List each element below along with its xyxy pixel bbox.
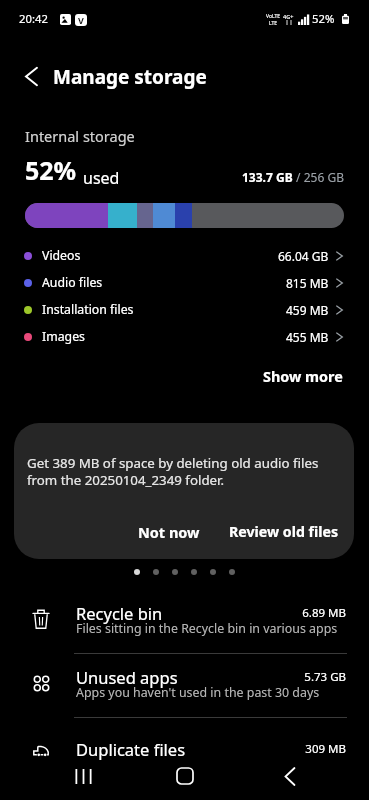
staticText: 6.89 MB xyxy=(0,605,346,621)
staticText: Not now xyxy=(138,522,200,542)
staticText: V xyxy=(78,14,84,26)
staticText: Installation files xyxy=(42,301,134,318)
staticText: LTE xyxy=(269,20,278,27)
staticText: 815 MB xyxy=(286,275,329,291)
staticText: 66.04 GB xyxy=(278,248,329,264)
staticText: 459 MB xyxy=(286,302,329,318)
button[interactable]: Back xyxy=(7,52,55,100)
staticText: Manage storage xyxy=(53,64,207,90)
staticText: Audio files xyxy=(42,274,103,291)
staticText: 20:42 xyxy=(19,11,48,26)
staticText: VoLTE xyxy=(266,13,281,20)
button[interactable]: Review old files xyxy=(222,518,346,545)
staticText: 309 MB xyxy=(0,741,346,757)
staticText: 52% xyxy=(25,153,77,187)
staticText: Get 389 MB of space by deleting old audi… xyxy=(27,454,319,488)
button[interactable]: Recents xyxy=(59,752,107,800)
staticText: 52% xyxy=(312,11,335,26)
button[interactable]: Unused apps xyxy=(0,652,369,716)
staticText: / 256 GB xyxy=(293,169,344,185)
staticText: Files sitting in the Recycle bin in vari… xyxy=(76,620,338,637)
button[interactable]: Not now xyxy=(131,518,207,546)
staticText: Internal storage xyxy=(25,126,135,146)
button[interactable]: Back xyxy=(266,752,314,800)
button[interactable]: Audio files xyxy=(0,269,369,296)
staticText: 4G+ xyxy=(283,13,294,20)
button[interactable]: Duplicate files xyxy=(0,718,369,770)
staticText: Images xyxy=(42,328,85,345)
staticText: Videos xyxy=(42,247,81,264)
button[interactable]: Installation files xyxy=(0,296,369,323)
staticText: Show more xyxy=(263,367,343,387)
staticText: Unused apps xyxy=(76,666,178,688)
button[interactable]: Recycle bin xyxy=(0,588,369,652)
button[interactable]: Show more xyxy=(237,359,369,395)
staticText: Apps you haven't used in the past 30 day… xyxy=(76,684,320,701)
button[interactable]: Images xyxy=(0,323,369,350)
staticText: 5.73 GB xyxy=(0,669,346,685)
staticText: Review old files xyxy=(229,522,339,541)
staticText: 455 MB xyxy=(286,329,329,345)
button[interactable]: Home xyxy=(161,752,209,800)
staticText: Duplicate files xyxy=(76,738,186,760)
staticText: Recycle bin xyxy=(76,602,163,624)
button[interactable]: Videos xyxy=(0,242,369,269)
staticText: used xyxy=(83,167,120,189)
staticText: 133.7 GB xyxy=(242,169,293,185)
